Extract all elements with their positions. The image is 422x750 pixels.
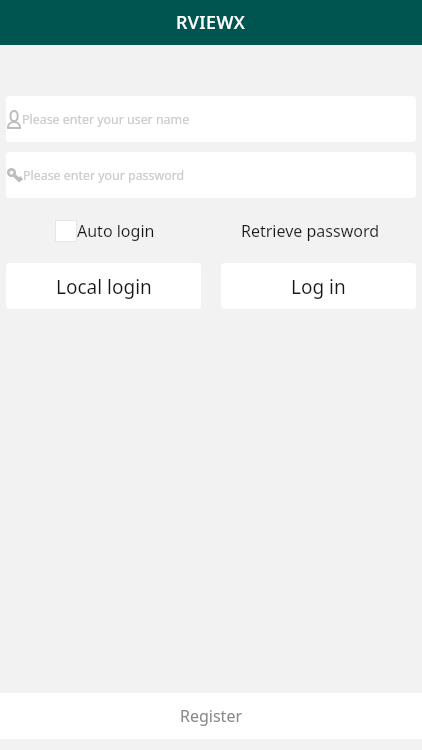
- staticText: Retrieve password: [241, 220, 380, 242]
- staticText: Please enter your password: [23, 167, 185, 184]
- staticText: Auto login: [77, 220, 155, 242]
- staticText: Register: [180, 705, 243, 727]
- button[interactable]: Log in: [221, 263, 416, 309]
- button[interactable]: Local login: [6, 263, 201, 309]
- button[interactable]: Retrieve password: [241, 220, 380, 242]
- other: Password: [7, 168, 22, 183]
- button[interactable]: Password: [6, 152, 416, 198]
- button[interactable]: Auto login: [55, 220, 155, 242]
- other: User name: [7, 110, 21, 129]
- staticText: RVIEWX: [176, 10, 246, 35]
- staticText: Log in: [291, 274, 346, 300]
- staticText: Please enter your user name: [22, 111, 190, 128]
- button[interactable]: Register: [0, 693, 422, 739]
- button[interactable]: User name: [6, 96, 416, 142]
- staticText: Local login: [56, 274, 152, 300]
